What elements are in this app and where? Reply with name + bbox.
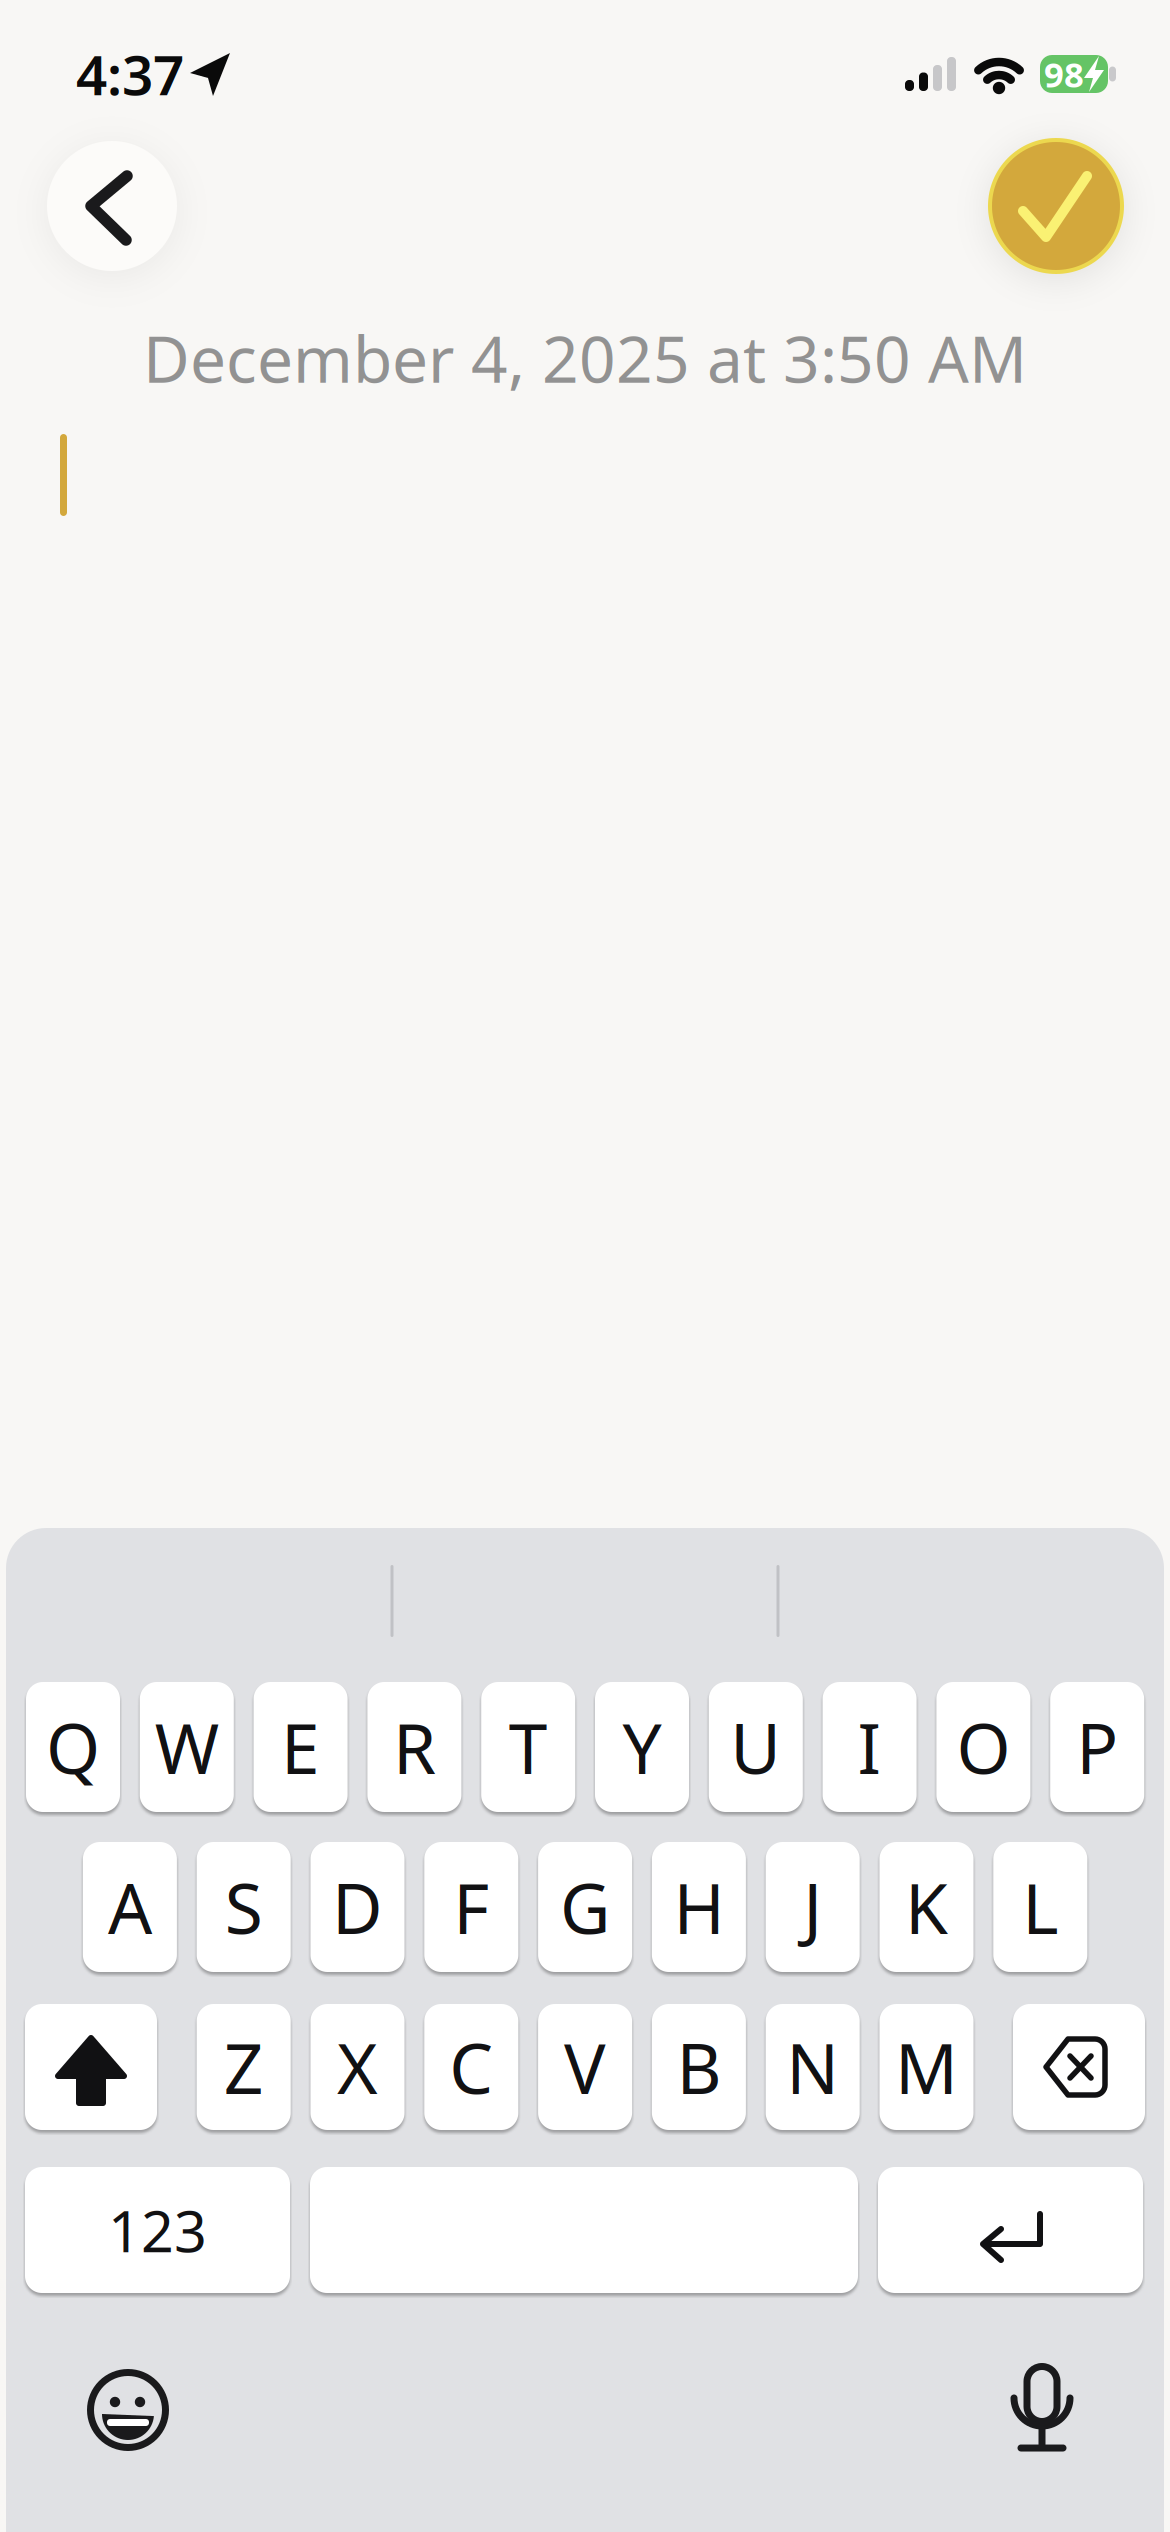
button[interactable]: P <box>1050 1682 1144 1812</box>
button[interactable]: U <box>709 1682 803 1812</box>
button[interactable]: E <box>254 1682 348 1812</box>
button[interactable] <box>25 2167 290 2293</box>
button[interactable]: A <box>83 1842 177 1972</box>
staticText: T <box>509 1701 548 1793</box>
staticText: December 4, 2025 at 3:50 AM <box>143 315 1027 400</box>
staticText: E <box>281 1701 320 1793</box>
button[interactable]: T <box>481 1682 575 1812</box>
button[interactable]: B <box>652 2004 746 2130</box>
staticText: U <box>730 1701 781 1793</box>
staticText: C <box>449 2021 493 2113</box>
button[interactable] <box>25 2004 157 2130</box>
button[interactable]: H <box>652 1842 746 1972</box>
button[interactable]: J <box>766 1842 860 1972</box>
button[interactable] <box>878 2167 1143 2293</box>
staticText: Z <box>224 2021 264 2113</box>
button[interactable] <box>83 2369 173 2459</box>
button[interactable]: C <box>424 2004 518 2130</box>
staticText: I <box>858 1701 882 1793</box>
button[interactable]: V <box>538 2004 632 2130</box>
staticText: W <box>155 1701 219 1793</box>
button[interactable]: I <box>823 1682 917 1812</box>
button[interactable]: Y <box>595 1682 689 1812</box>
staticText: S <box>225 1861 263 1953</box>
staticText: N <box>786 2021 839 2113</box>
staticText: K <box>905 1861 948 1953</box>
staticText: F <box>453 1861 489 1953</box>
staticText: R <box>393 1701 436 1793</box>
button[interactable]: M <box>879 2004 973 2130</box>
button[interactable] <box>990 140 1122 272</box>
staticText: 98 <box>1044 51 1084 97</box>
button[interactable]: X <box>310 2004 404 2130</box>
button[interactable]: L <box>993 1842 1087 1972</box>
staticText: M <box>895 2021 958 2113</box>
staticText: H <box>673 1861 724 1953</box>
button[interactable]: S <box>197 1842 291 1972</box>
button[interactable]: R <box>367 1682 461 1812</box>
staticText: J <box>803 1861 822 1953</box>
button[interactable] <box>47 141 177 271</box>
staticText: Q <box>46 1701 100 1793</box>
button[interactable] <box>1013 2004 1145 2130</box>
staticText: B <box>676 2021 721 2113</box>
button[interactable]: Q <box>26 1682 120 1812</box>
button[interactable]: F <box>424 1842 518 1972</box>
staticText: X <box>337 2021 378 2113</box>
button[interactable]: O <box>936 1682 1030 1812</box>
staticText: G <box>560 1861 610 1953</box>
button[interactable]: W <box>140 1682 234 1812</box>
staticText: 4:37 <box>76 38 184 110</box>
staticText: V <box>564 2021 606 2113</box>
button[interactable]: G <box>538 1842 632 1972</box>
staticText: A <box>108 1861 152 1953</box>
staticText: L <box>1022 1861 1058 1953</box>
staticText: Y <box>622 1701 661 1793</box>
button[interactable]: D <box>310 1842 404 1972</box>
staticText: D <box>332 1861 383 1953</box>
button[interactable]: K <box>879 1842 973 1972</box>
button[interactable]: Z <box>197 2004 291 2130</box>
staticText: P <box>1076 1701 1118 1793</box>
staticText: O <box>956 1701 1010 1793</box>
button[interactable]: N <box>766 2004 860 2130</box>
staticText: 123 <box>108 2192 207 2268</box>
button[interactable] <box>998 2370 1088 2470</box>
